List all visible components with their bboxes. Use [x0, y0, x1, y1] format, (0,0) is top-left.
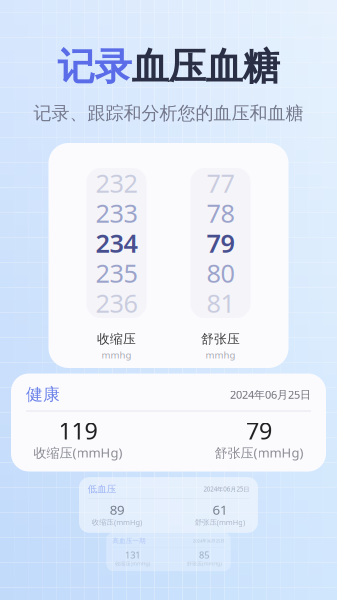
staticText: 235: [95, 256, 137, 290]
staticText: mmhg: [101, 348, 131, 361]
staticText: 232: [95, 166, 137, 200]
staticText: 记录、跟踪和分析您的血压和血糖: [33, 102, 303, 125]
staticText: 77: [206, 166, 234, 200]
staticText: 舒张压(mmHg): [214, 547, 303, 564]
staticText: 79: [206, 226, 234, 260]
staticText: mmhg: [205, 348, 235, 361]
staticText: 舒张压(mmHg): [214, 444, 303, 461]
staticText: 血压血糖: [131, 44, 279, 90]
staticText: 236: [95, 286, 137, 320]
staticText: 2024年06月25日: [230, 490, 311, 505]
staticText: 233: [95, 196, 137, 230]
staticText: 234: [95, 226, 137, 260]
staticText: 健康: [26, 384, 60, 405]
staticText: 80: [206, 256, 234, 290]
staticText: 89: [65, 518, 91, 549]
staticText: 收缩压(mmHg): [33, 547, 122, 564]
staticText: 收缩压: [97, 331, 136, 347]
staticText: 79: [246, 415, 272, 446]
staticText: 81: [206, 286, 234, 320]
staticText: 61: [246, 518, 272, 549]
staticText: 记录: [57, 44, 131, 90]
staticText: 78: [206, 196, 234, 230]
staticText: 舒张压: [201, 331, 240, 347]
staticText: 高血压一期: [26, 542, 111, 563]
staticText: 2024年06月25日: [230, 387, 311, 402]
staticText: 收缩压(mmHg): [33, 444, 122, 461]
staticText: 119: [58, 415, 97, 446]
